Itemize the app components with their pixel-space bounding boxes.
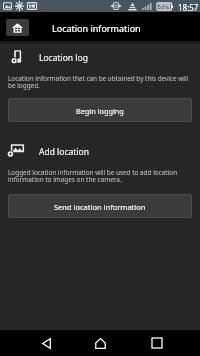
staticText: Location information that can be obtaine… <box>8 74 193 90</box>
other: Add location <box>8 143 24 159</box>
button[interactable]: Recent apps <box>142 330 172 356</box>
button[interactable]: Up <box>6 19 29 36</box>
staticText: Logged location information will be used… <box>8 168 193 184</box>
other: Location log <box>9 48 25 64</box>
button[interactable]: Send location information <box>8 194 192 218</box>
staticText: 58% <box>158 3 170 10</box>
staticText: 18:57 <box>178 2 199 13</box>
staticText: Begin logging <box>76 106 124 116</box>
staticText: Location information <box>52 22 141 34</box>
button[interactable]: Back <box>28 330 64 356</box>
staticText: Location log <box>39 52 88 64</box>
staticText: Add location <box>39 146 89 158</box>
staticText: Send location information <box>54 202 146 212</box>
button[interactable]: Begin logging <box>8 98 192 122</box>
button[interactable]: Home <box>85 330 115 356</box>
